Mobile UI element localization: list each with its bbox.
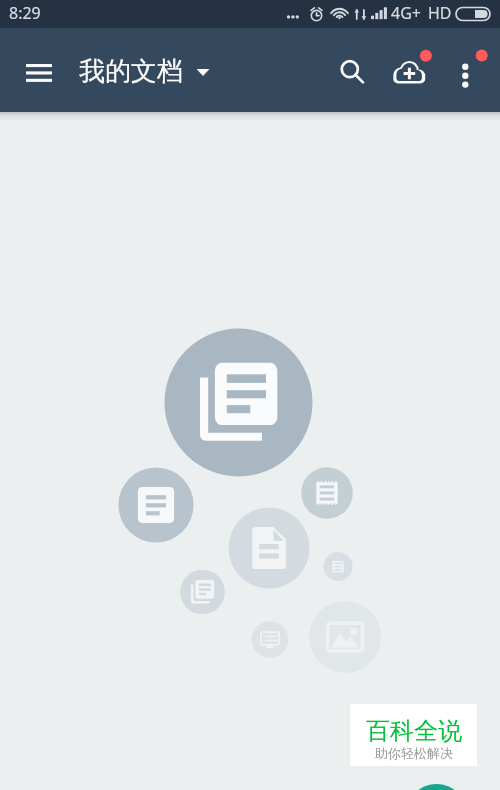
button[interactable]: 我的文档 xyxy=(79,55,213,88)
button[interactable]: Add document xyxy=(406,784,467,790)
button[interactable]: More options xyxy=(446,49,492,95)
staticText: 我的文档 xyxy=(79,55,183,88)
button[interactable]: Navigation menu xyxy=(13,47,65,99)
staticText: HD xyxy=(428,2,452,24)
button[interactable]: Search xyxy=(328,49,374,95)
button[interactable]: Upload xyxy=(388,49,434,95)
staticText: 百科全说 xyxy=(366,716,462,746)
staticText: 8:29 xyxy=(9,2,41,24)
staticText: 助你轻松解决 xyxy=(375,745,453,761)
staticText: 4G+ xyxy=(391,2,421,24)
